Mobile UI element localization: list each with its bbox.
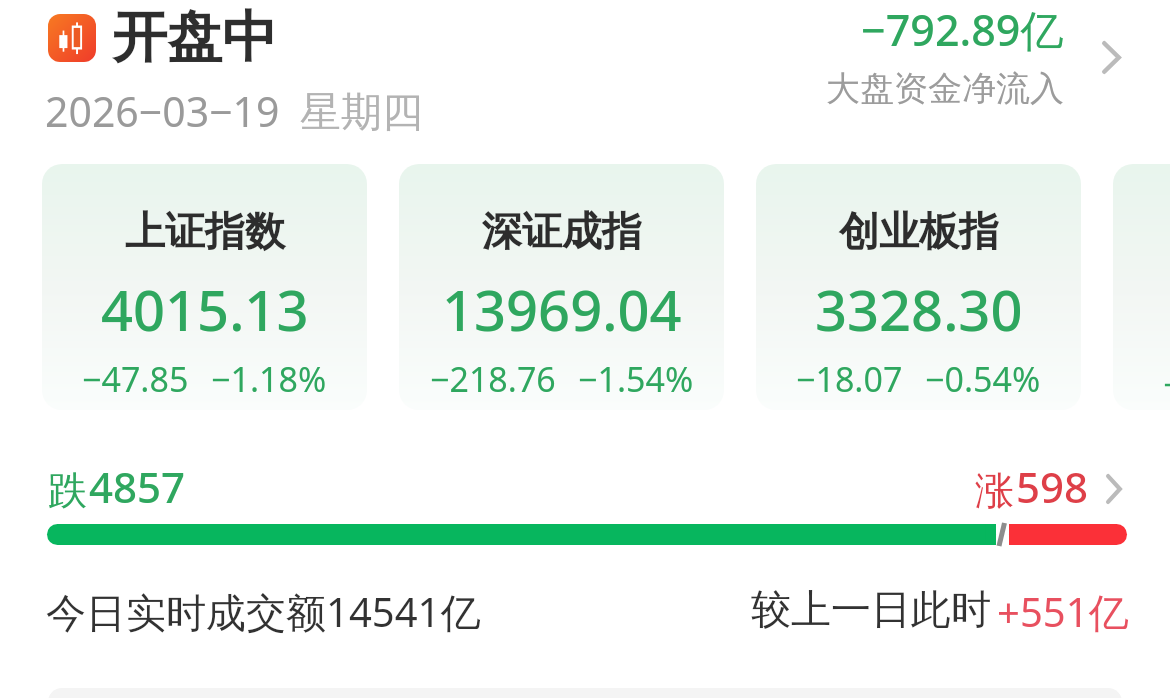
staticText: 深证成指 (482, 206, 642, 256)
staticText: 涨 (975, 466, 1014, 515)
button[interactable]: −792.89亿 (760, 0, 1140, 120)
button[interactable]: 行情 (48, 14, 96, 62)
staticText: −47.85 (82, 356, 189, 402)
other: 查看涨跌家数 (1106, 474, 1122, 504)
button[interactable]: 深证成指 (399, 164, 724, 410)
staticText: 今日实时成交额14541亿 (46, 584, 481, 639)
staticText: 大盘资金净流入 (826, 67, 1064, 110)
staticText: 创业板指 (839, 206, 999, 256)
other: 查看大盘资金净流入 (1102, 41, 1121, 74)
staticText: −8.41 (1163, 361, 1170, 407)
staticText: −1.54% (578, 356, 694, 402)
staticText: −218.76 (430, 356, 556, 402)
staticText: −1.18% (211, 356, 327, 402)
staticText: −0.54% (925, 356, 1041, 402)
staticText: 3328.30 (815, 271, 1023, 347)
staticText: 较上一日此时 (751, 584, 991, 634)
button[interactable]: 科创50指 (1113, 164, 1170, 410)
staticText: 星期四 (300, 87, 423, 139)
staticText: 13969.04 (442, 271, 682, 347)
staticText: 上证指数 (125, 206, 285, 256)
staticText: 598 (1016, 458, 1089, 515)
staticText: +551亿 (997, 584, 1129, 639)
staticText: −18.07 (796, 356, 903, 402)
staticText: 跌 (48, 466, 87, 515)
button[interactable]: 创业板指 (756, 164, 1081, 410)
button[interactable]: 上证指数 (42, 164, 367, 410)
staticText: 开盘中 (112, 3, 277, 72)
button[interactable]: 跌 (42, 460, 1132, 518)
staticText: 4015.13 (101, 271, 309, 347)
staticText: 2026−03−19 (45, 83, 280, 139)
staticText: 4857 (89, 458, 186, 515)
staticText: −792.89亿 (861, 0, 1064, 59)
